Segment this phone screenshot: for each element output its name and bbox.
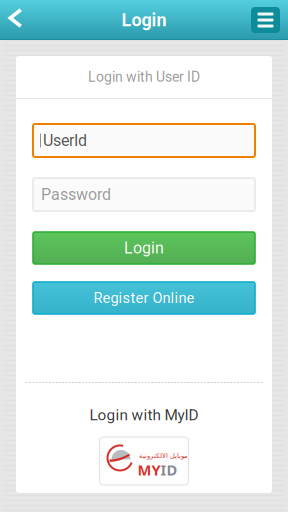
staticText: Login <box>124 239 164 257</box>
staticText: MY <box>137 460 160 479</box>
button[interactable]: Login with MyID <box>99 424 188 485</box>
staticText: موبايل الالكترونية <box>138 452 187 460</box>
staticText: Register Online <box>93 289 194 307</box>
button[interactable]: Login <box>16 211 272 264</box>
staticText: ID <box>160 460 177 479</box>
staticText: Login <box>121 9 166 31</box>
staticText: Login with MyID <box>89 406 198 424</box>
button[interactable]: Back <box>0 2 35 38</box>
button[interactable]: Register Online <box>16 264 272 314</box>
staticText: Login with User ID <box>88 69 200 85</box>
staticText: UserId <box>43 131 87 150</box>
button[interactable]: Menu <box>251 7 288 33</box>
staticText: Password <box>41 185 111 204</box>
